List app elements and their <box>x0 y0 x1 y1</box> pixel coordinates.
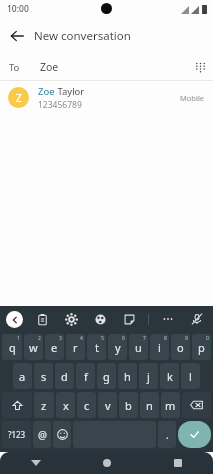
staticText: t <box>95 340 99 355</box>
button[interactable]: ?123 <box>2 421 31 448</box>
staticText: 123456789 <box>38 99 82 111</box>
staticText: 6 <box>122 335 125 342</box>
staticText: g <box>103 369 110 384</box>
button[interactable]: Clipboard <box>32 309 52 329</box>
button[interactable]: Shift <box>2 392 32 418</box>
button[interactable]: Back <box>0 452 71 474</box>
button[interactable]: Home <box>71 452 142 474</box>
button[interactable]: u <box>129 334 148 360</box>
staticText: To <box>9 61 20 74</box>
staticText: z <box>41 398 47 413</box>
staticText: s <box>41 369 47 384</box>
button[interactable]: Done <box>178 421 211 448</box>
staticText: 4 <box>80 335 83 342</box>
staticText: 0 <box>206 335 209 342</box>
staticText: 9 <box>185 335 188 342</box>
button[interactable]: Emoji <box>53 421 71 448</box>
button[interactable]: s <box>34 363 53 389</box>
staticText: o <box>177 340 184 355</box>
button[interactable]: i <box>150 334 169 360</box>
staticText: r <box>73 340 78 355</box>
staticText: k <box>167 369 173 384</box>
button[interactable]: h <box>118 363 137 389</box>
staticText: f <box>84 369 88 384</box>
staticText: l <box>189 369 192 384</box>
button[interactable]: Settings <box>61 309 81 329</box>
button[interactable]: v <box>98 392 117 418</box>
staticText: x <box>63 398 69 413</box>
button[interactable]: x <box>56 392 75 418</box>
button[interactable]: @ <box>33 421 51 448</box>
button[interactable]: j <box>139 363 158 389</box>
button[interactable]: . <box>158 421 176 448</box>
button[interactable]: Recent apps <box>142 452 213 474</box>
staticText: 5 <box>101 335 104 342</box>
staticText: d <box>61 369 68 384</box>
staticText: Z <box>16 91 22 105</box>
button[interactable]: l <box>181 363 200 389</box>
button[interactable]: Theme <box>90 309 110 329</box>
staticText: b <box>125 398 132 413</box>
button[interactable]: e <box>45 334 64 360</box>
button[interactable]: d <box>55 363 74 389</box>
button[interactable]: c <box>77 392 96 418</box>
button[interactable]: g <box>97 363 116 389</box>
button[interactable]: Back <box>0 19 34 53</box>
staticText: q <box>9 340 16 355</box>
staticText: Zoe <box>38 85 55 98</box>
staticText: c <box>84 398 90 413</box>
button[interactable]: f <box>76 363 95 389</box>
staticText: New conversation <box>34 28 131 44</box>
button[interactable]: w <box>24 334 43 360</box>
staticText: h <box>124 369 131 384</box>
staticText: 8 <box>164 335 167 342</box>
staticText: 2 <box>38 335 41 342</box>
staticText: j <box>147 369 150 384</box>
staticText: . <box>166 428 169 442</box>
staticText: e <box>51 340 58 355</box>
staticText: w <box>29 340 38 355</box>
button[interactable]: p <box>192 334 211 360</box>
button[interactable]: Backspace <box>182 392 211 418</box>
button[interactable]: m <box>161 392 180 418</box>
staticText: u <box>135 340 142 355</box>
button[interactable]: b <box>119 392 138 418</box>
staticText: a <box>19 369 26 384</box>
button[interactable]: t <box>87 334 106 360</box>
staticText: @ <box>38 428 47 442</box>
button[interactable]: a <box>13 363 32 389</box>
button[interactable]: k <box>160 363 179 389</box>
staticText: Taylor <box>55 85 85 98</box>
button[interactable]: z <box>34 392 54 418</box>
staticText: 3 <box>59 335 62 342</box>
staticText: 7 <box>143 335 146 342</box>
button[interactable]: Dialpad <box>187 54 213 80</box>
staticText: n <box>146 398 153 413</box>
button[interactable]: q <box>2 334 22 360</box>
button[interactable]: Voice input off <box>187 309 207 329</box>
staticText: v <box>105 398 111 413</box>
button[interactable]: More options <box>158 309 178 329</box>
staticText: 10:00 <box>7 3 29 15</box>
staticText: y <box>115 340 121 355</box>
staticText: Mobile <box>180 93 205 103</box>
staticText: p <box>198 340 205 355</box>
button[interactable]: y <box>108 334 127 360</box>
button[interactable]: o <box>171 334 190 360</box>
button[interactable]: r <box>66 334 85 360</box>
staticText: m <box>165 398 176 413</box>
button[interactable]: Z <box>0 81 213 114</box>
staticText: i <box>158 340 161 355</box>
button[interactable]: n <box>140 392 159 418</box>
staticText: Zoe <box>40 60 59 74</box>
button[interactable]: Close toolbar <box>6 311 23 328</box>
button[interactable]: Stickers <box>119 309 139 329</box>
staticText: ?123 <box>8 429 26 440</box>
staticText: 1 <box>17 335 20 342</box>
